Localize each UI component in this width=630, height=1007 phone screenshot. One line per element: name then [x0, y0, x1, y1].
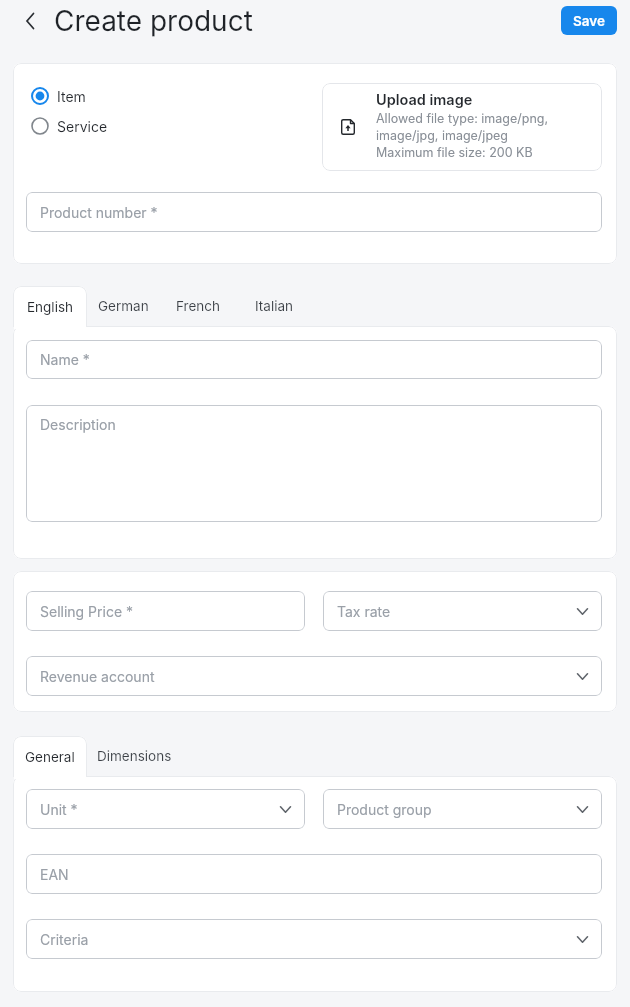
- button[interactable]: [31, 87, 191, 105]
- staticText: German: [98, 298, 149, 314]
- staticText: Criteria: [40, 931, 89, 948]
- button[interactable]: Description: [26, 405, 602, 522]
- staticText: Maximum file size: 200 KB: [376, 145, 533, 160]
- staticText: Service: [57, 118, 108, 135]
- staticText: Revenue account: [40, 668, 155, 685]
- button[interactable]: EAN: [26, 854, 602, 894]
- button[interactable]: [16, 7, 44, 35]
- staticText: Product group: [337, 801, 432, 818]
- staticText: English: [27, 299, 74, 315]
- staticText: Unit *: [40, 801, 78, 818]
- staticText: Italian: [255, 298, 293, 314]
- staticText: Description: [40, 416, 116, 433]
- staticText: EAN: [40, 866, 69, 883]
- button[interactable]: Tax rate: [323, 591, 602, 631]
- staticText: Selling Price *: [40, 603, 134, 620]
- staticText: Product number *: [40, 204, 158, 221]
- button[interactable]: Revenue account: [26, 656, 602, 696]
- staticText: image/jpg, image/jpeg: [376, 128, 509, 143]
- button[interactable]: English: [13, 286, 87, 327]
- button[interactable]: [31, 117, 191, 135]
- staticText: Allowed file type: image/png,: [376, 111, 549, 126]
- staticText: General: [25, 749, 75, 765]
- button[interactable]: General: [13, 736, 87, 777]
- button[interactable]: Save: [561, 6, 617, 35]
- button[interactable]: [322, 83, 602, 171]
- button[interactable]: German: [63, 286, 183, 326]
- button[interactable]: Product group: [323, 789, 602, 829]
- button[interactable]: Criteria: [26, 919, 602, 959]
- staticText: Save: [573, 13, 605, 29]
- button[interactable]: Dimensions: [74, 736, 194, 776]
- staticText: Upload image: [376, 91, 473, 109]
- button[interactable]: Unit *: [26, 789, 305, 829]
- staticText: Name *: [40, 351, 90, 368]
- staticText: Tax rate: [337, 603, 391, 620]
- staticText: Create product: [54, 4, 253, 38]
- staticText: Item: [57, 88, 86, 105]
- staticText: Dimensions: [97, 748, 172, 764]
- staticText: French: [176, 298, 220, 314]
- button[interactable]: Name *: [26, 340, 602, 379]
- button[interactable]: French: [138, 286, 258, 326]
- button[interactable]: Italian: [214, 286, 334, 326]
- button[interactable]: Selling Price *: [26, 591, 305, 631]
- button[interactable]: Product number *: [26, 192, 602, 232]
